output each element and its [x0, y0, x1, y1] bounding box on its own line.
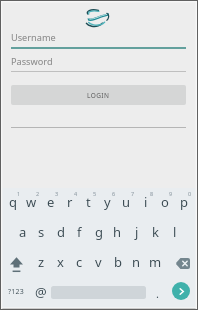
staticText: Password [11, 55, 53, 68]
staticText: 6 [112, 190, 116, 197]
staticText: 1 [17, 190, 21, 197]
staticText: t [86, 193, 91, 211]
staticText: j [135, 223, 139, 241]
button[interactable]: p [174, 188, 193, 217]
button[interactable]: z [32, 248, 51, 278]
staticText: c [76, 253, 83, 271]
button[interactable]: x [51, 248, 70, 278]
staticText: 0 [188, 190, 192, 197]
staticText: d [57, 223, 65, 241]
staticText: 7 [131, 190, 135, 197]
button[interactable]: Password [11, 54, 186, 72]
button[interactable]: q [3, 188, 22, 217]
staticText: h [113, 223, 122, 241]
button[interactable]: Shift [3, 248, 32, 278]
staticText: LOGIN [87, 91, 110, 100]
button[interactable]: r [60, 188, 79, 217]
staticText: 9 [169, 190, 173, 197]
button[interactable]: l [165, 218, 184, 248]
button[interactable]: Backspace [165, 248, 194, 278]
button[interactable]: . [149, 278, 165, 308]
button[interactable]: u [117, 188, 136, 217]
button[interactable]: v [89, 248, 108, 278]
staticText: o [161, 193, 169, 211]
staticText: q [9, 193, 17, 211]
button[interactable]: @ [31, 278, 50, 308]
button[interactable]: n [127, 248, 146, 278]
staticText: v [95, 253, 102, 271]
staticText: p [180, 193, 188, 211]
staticText: x [57, 253, 64, 271]
staticText: l [173, 223, 177, 241]
staticText: @ [35, 283, 47, 301]
button[interactable]: e [41, 188, 60, 217]
button[interactable]: b [108, 248, 127, 278]
staticText: 2 [36, 190, 40, 197]
staticText: ?123 [8, 287, 24, 297]
button[interactable]: o [155, 188, 174, 217]
button[interactable]: LOGIN [11, 85, 186, 105]
button[interactable]: h [108, 218, 127, 248]
staticText: b [114, 253, 122, 271]
staticText: m [149, 253, 162, 271]
staticText: Username [11, 31, 56, 44]
staticText: u [122, 193, 131, 211]
button[interactable]: t [79, 188, 98, 217]
staticText: s [38, 223, 45, 241]
button[interactable]: w [22, 188, 41, 217]
staticText: n [132, 253, 141, 271]
button[interactable]: ?123 [4, 278, 28, 308]
staticText: 8 [150, 190, 154, 197]
staticText: z [38, 253, 45, 271]
staticText: . [156, 286, 159, 301]
staticText: 5 [93, 190, 97, 197]
button[interactable]: m [146, 248, 165, 278]
button[interactable]: k [146, 218, 165, 248]
staticText: 4 [74, 190, 78, 197]
button[interactable]: f [70, 218, 89, 248]
button[interactable]: a [13, 218, 32, 248]
button[interactable]: j [127, 218, 146, 248]
button[interactable]: d [51, 218, 70, 248]
button[interactable]: c [70, 248, 89, 278]
staticText: 3 [55, 190, 59, 197]
staticText: i [144, 193, 148, 211]
staticText: a [19, 223, 27, 241]
staticText: r [67, 193, 73, 211]
button[interactable]: g [89, 218, 108, 248]
button[interactable]: y [98, 188, 117, 217]
staticText: e [47, 193, 55, 211]
staticText: k [152, 223, 159, 241]
button[interactable]: s [32, 218, 51, 248]
button[interactable]: i [136, 188, 155, 217]
button[interactable]: Username [11, 30, 186, 49]
staticText: w [26, 193, 37, 211]
staticText: f [77, 223, 82, 241]
staticText: g [95, 223, 103, 241]
staticText: y [104, 193, 111, 211]
button[interactable]: Enter [172, 282, 190, 300]
